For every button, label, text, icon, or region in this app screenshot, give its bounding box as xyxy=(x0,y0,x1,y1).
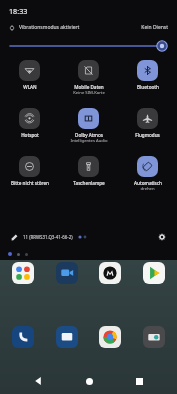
button[interactable]: Home xyxy=(77,369,101,393)
button[interactable] xyxy=(12,262,34,284)
button[interactable]: Mobile Daten xyxy=(59,60,118,96)
button[interactable]: Bitte nicht stören xyxy=(0,156,59,186)
staticText: Kein Dienst xyxy=(141,24,168,31)
staticText: Mobile Daten xyxy=(74,84,104,90)
button[interactable]: WLAN xyxy=(0,60,59,90)
staticText: 18:33 xyxy=(9,6,28,16)
button[interactable]: Recent apps xyxy=(127,369,151,393)
button[interactable]: Bluetooth xyxy=(118,60,177,90)
button[interactable]: Dolby Atmos xyxy=(59,108,118,144)
button[interactable] xyxy=(99,326,121,348)
button[interactable]: Flugmodus xyxy=(118,108,177,138)
button[interactable]: Hotspot xyxy=(0,108,59,138)
staticText: Bitte nicht stören xyxy=(11,180,49,186)
staticText: Automatisch xyxy=(134,180,162,186)
button[interactable]: Settings xyxy=(155,230,169,244)
button[interactable] xyxy=(143,326,165,348)
staticText: Keine SIM-Karte xyxy=(73,90,105,96)
button[interactable]: Back xyxy=(26,369,50,393)
button[interactable] xyxy=(56,326,78,348)
staticText: Dolby Atmos xyxy=(75,132,103,138)
staticText: drehen xyxy=(140,186,155,192)
button[interactable] xyxy=(143,262,165,284)
button[interactable]: Automatisch xyxy=(118,156,177,192)
button[interactable] xyxy=(56,262,78,284)
button[interactable]: Edit tiles xyxy=(8,231,20,243)
staticText: Intelligentes Audio xyxy=(70,138,108,144)
staticText: Taschenlampe xyxy=(73,180,105,186)
staticText: 11 (RRWS31.Q3-41-66-2) xyxy=(23,234,73,240)
button[interactable] xyxy=(99,262,121,284)
staticText: Vibrationsmodus aktiviert xyxy=(19,24,80,31)
staticText: Flugmodus xyxy=(135,132,160,138)
staticText: Bluetooth xyxy=(137,84,159,90)
staticText: Hotspot xyxy=(21,132,39,138)
button[interactable]: Taschenlampe xyxy=(59,156,118,186)
staticText: WLAN xyxy=(23,84,37,90)
button[interactable] xyxy=(12,326,34,348)
button[interactable]: Brightness xyxy=(10,40,167,52)
